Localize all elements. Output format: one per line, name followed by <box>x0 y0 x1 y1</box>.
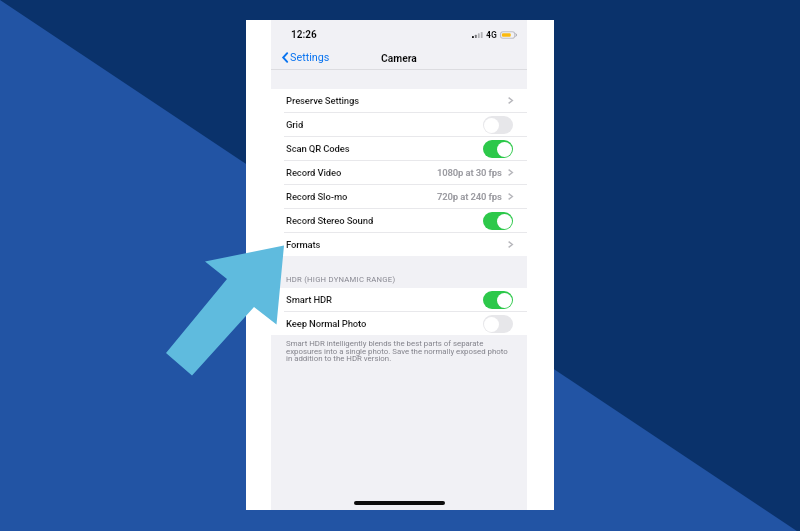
button[interactable]: Grid <box>271 113 527 136</box>
staticText: Scan QR Codes <box>286 143 350 154</box>
button[interactable]: Record Stereo Sound, on <box>483 212 513 230</box>
button[interactable]: Keep Normal Photo <box>271 312 527 335</box>
staticText: Preserve Settings <box>286 95 360 106</box>
button[interactable]: Preserve Settings <box>271 89 527 112</box>
staticText: 1080p at 30 fps <box>437 167 502 178</box>
button[interactable]: Scan QR Codes, on <box>483 140 513 158</box>
button[interactable]: Smart HDR, on <box>483 291 513 309</box>
staticText: Settings <box>290 51 330 64</box>
button[interactable]: Settings <box>271 45 373 70</box>
staticText: Record Stereo Sound <box>286 215 374 226</box>
button[interactable]: Record Video <box>271 161 527 184</box>
staticText: Camera <box>381 52 417 64</box>
button[interactable]: Scan QR Codes <box>271 137 527 160</box>
staticText: Keep Normal Photo <box>286 318 367 329</box>
button[interactable]: Record Stereo Sound <box>271 209 527 232</box>
button[interactable]: Smart HDR <box>271 288 527 311</box>
button[interactable]: Grid, off <box>483 116 513 134</box>
staticText: 4G <box>486 30 497 40</box>
staticText: Grid <box>286 119 304 130</box>
staticText: Smart HDR <box>286 294 332 305</box>
staticText: 720p at 240 fps <box>437 191 502 202</box>
staticText: Smart HDR intelligently blends the best … <box>286 339 513 363</box>
button[interactable]: Formats <box>271 233 527 256</box>
staticText: Record Video <box>286 167 342 178</box>
staticText: Formats <box>286 239 321 250</box>
staticText: Record Slo-mo <box>286 191 348 202</box>
staticText: HDR (HIGH DYNAMIC RANGE) <box>286 275 396 284</box>
button[interactable]: Record Slo-mo <box>271 185 527 208</box>
button[interactable]: Keep Normal Photo, off <box>483 315 513 333</box>
other: Battery <box>500 31 517 39</box>
staticText: 12:26 <box>291 29 317 41</box>
other: Cellular signal <box>472 32 483 38</box>
